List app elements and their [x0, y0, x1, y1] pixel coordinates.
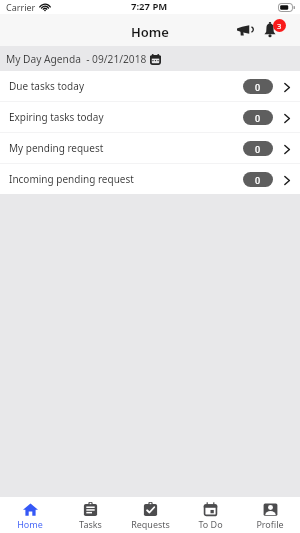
button[interactable]: Pick date [148, 49, 163, 69]
staticText: 7:27 PM [131, 0, 168, 13]
button[interactable]: Requests [120, 497, 180, 533]
staticText: 0 [255, 112, 261, 124]
button[interactable]: My pending request [0, 133, 300, 163]
staticText: 0 [255, 174, 261, 186]
staticText: Profile [256, 518, 284, 530]
button[interactable]: Expiring tasks today [0, 102, 300, 132]
button[interactable]: Profile [240, 497, 300, 533]
staticText: Tasks [79, 518, 102, 530]
button[interactable]: Incoming pending request [0, 164, 300, 194]
button[interactable]: Home [0, 497, 60, 533]
staticText: Carrier [6, 1, 36, 13]
staticText: Incoming pending request [9, 172, 134, 186]
staticText: Requests [131, 518, 170, 530]
button[interactable]: Announcements [231, 16, 259, 42]
button[interactable]: To Do [180, 497, 240, 533]
staticText: Expiring tasks today [9, 110, 104, 124]
staticText: My Day Agenda - 09/21/2018 [6, 52, 147, 66]
button[interactable]: Notifications [261, 17, 291, 43]
staticText: 3 [277, 21, 282, 31]
staticText: To Do [198, 518, 223, 530]
button[interactable]: Due tasks today [0, 71, 300, 101]
staticText: Home [17, 518, 43, 530]
staticText: Home [131, 23, 169, 41]
staticText: Due tasks today [9, 79, 84, 93]
button[interactable]: Tasks [60, 497, 120, 533]
staticText: My pending request [9, 141, 104, 155]
staticText: 0 [255, 143, 261, 155]
staticText: 0 [255, 81, 261, 93]
